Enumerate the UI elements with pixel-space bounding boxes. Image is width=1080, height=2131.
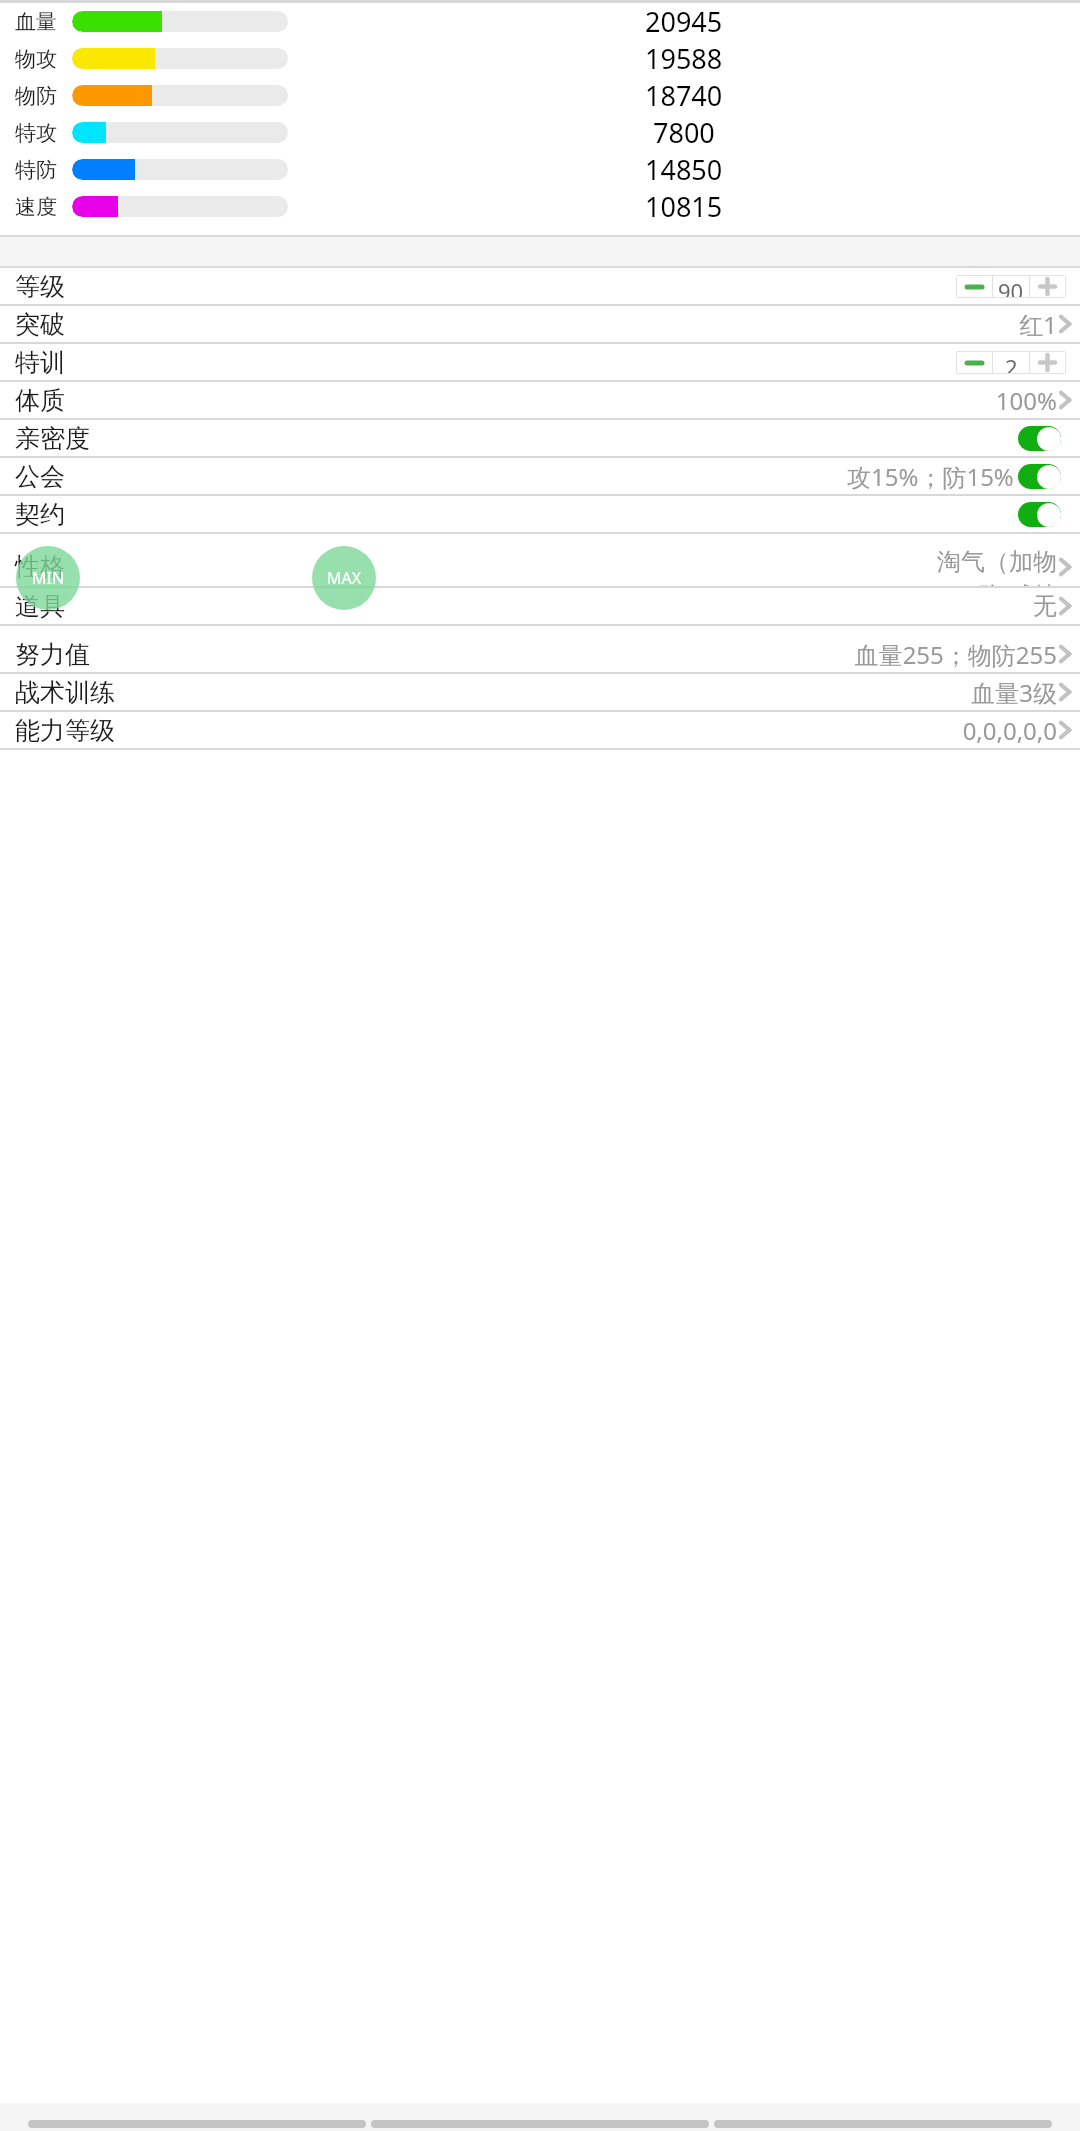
staticText: 特防 [15,157,57,183]
button[interactable]: 战术训练 [0,674,1080,710]
button[interactable]: 特攻 [0,114,1080,151]
staticText: 100% [995,384,1057,417]
staticText: 突破 [15,309,65,340]
staticText: 攻15%；防15% [847,460,1014,493]
button[interactable]: 特防 [0,151,1080,188]
button[interactable]: 物防 [0,77,1080,114]
staticText: 血量255；物防255 [854,638,1057,671]
other: Open [1057,717,1073,743]
button[interactable]: 体质 [0,382,1080,418]
staticText: 14850 [645,151,723,188]
staticText: 无 [1033,591,1057,621]
staticText: 血量3级 [971,676,1057,709]
staticText: 特训 [15,347,65,378]
button[interactable]: 能力等级 [0,712,1080,748]
other: Open [1057,311,1073,337]
staticText: 等级 [15,271,65,302]
staticText: 性格 [15,551,65,582]
button[interactable]: Decrease 特训 [957,352,992,373]
staticText: 道具 [15,591,65,622]
staticText: MIN [32,567,65,589]
staticText: 物攻 [15,46,57,72]
staticText: 努力值 [15,639,90,670]
button[interactable]: 契约 toggle [1018,502,1061,527]
staticText: 红1 [1019,308,1057,341]
other: Open [1057,387,1073,413]
staticText: 18740 [645,77,723,114]
staticText: 淘气（加物防;减特 攻） [907,547,1057,586]
staticText: 契约 [15,499,65,530]
staticText: 物防 [15,83,57,109]
staticText: 公会 [15,461,65,492]
button[interactable]: 性格 [0,547,1080,586]
button[interactable]: 血量 [0,3,1080,40]
button[interactable]: 物攻 [0,40,1080,77]
other: Open [1057,593,1073,619]
staticText: 90 [998,276,1024,297]
other: Open [1057,554,1073,580]
staticText: 速度 [15,194,57,220]
staticText: 10815 [645,188,723,225]
staticText: 19588 [645,40,723,77]
staticText: MAX [327,567,362,589]
staticText: 血量 [15,9,57,35]
staticText: 能力等级 [15,715,115,746]
button[interactable]: MAX [312,546,376,610]
button[interactable]: 努力值 [0,636,1080,672]
staticText: 7800 [653,114,715,151]
staticText: 特攻 [15,120,57,146]
other: Open [1057,679,1073,705]
button[interactable]: Increase 特训 [1030,352,1065,373]
other: Open [1057,641,1073,667]
button[interactable]: Decrease 等级 [957,276,992,297]
button[interactable]: 突破 [0,306,1080,342]
button[interactable]: MIN [16,546,80,610]
staticText: 0,0,0,0,0 [962,714,1057,747]
staticText: 20945 [645,3,723,40]
button[interactable]: Increase 等级 [1030,276,1065,297]
staticText: 战术训练 [15,677,115,708]
staticText: 体质 [15,385,65,416]
button[interactable]: 亲密度 toggle [1018,426,1061,451]
staticText: 2 [1005,352,1018,373]
button[interactable]: 速度 [0,188,1080,225]
button[interactable]: 道具 [0,588,1080,624]
staticText: 亲密度 [15,423,90,454]
button[interactable]: 公会 toggle [1018,464,1061,489]
